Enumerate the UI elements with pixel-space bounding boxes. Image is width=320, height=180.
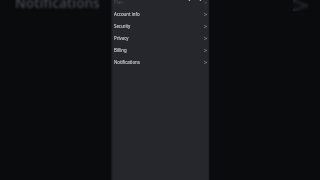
staticText: Billing <box>114 47 127 53</box>
staticText: Account info <box>114 11 140 17</box>
button[interactable]: Security <box>110 20 210 32</box>
button[interactable]: Account info <box>110 8 210 20</box>
other: Toolbar actions <box>110 0 210 2</box>
button[interactable]: Billing <box>110 44 210 56</box>
button[interactable]: Plan <box>110 0 210 8</box>
staticText: Privacy <box>114 35 129 41</box>
staticText: Plan <box>114 0 123 5</box>
staticText: Security <box>114 23 131 29</box>
staticText: Notifications <box>114 59 140 65</box>
staticText: Notifications <box>15 0 100 12</box>
button[interactable]: Notifications <box>110 56 210 68</box>
button[interactable]: Privacy <box>110 32 210 44</box>
